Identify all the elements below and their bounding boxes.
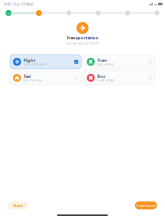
staticText: Coach service (97, 79, 115, 82)
button[interactable]: Flight (10, 55, 81, 69)
staticText: Flight (23, 57, 35, 63)
staticText: Taxi (23, 73, 30, 79)
staticText: Fly to destination (23, 63, 47, 66)
staticText: Train (97, 57, 107, 63)
staticText: Bus (97, 73, 105, 79)
staticText: 9:41 Tue 12 Mar (4, 1, 34, 7)
staticText: Continue (136, 203, 155, 208)
staticText: Rail journey (97, 63, 113, 66)
staticText: How will you get there? (65, 42, 99, 45)
button[interactable]: Continue (135, 201, 157, 209)
button[interactable]: Taxi (10, 71, 81, 85)
button[interactable]: Train (84, 55, 155, 69)
staticText: Door to door (23, 79, 42, 82)
staticText: Back (13, 203, 22, 208)
button[interactable]: Bus (84, 71, 155, 85)
staticText: Transportation (66, 35, 98, 40)
button[interactable]: Back (8, 201, 28, 209)
